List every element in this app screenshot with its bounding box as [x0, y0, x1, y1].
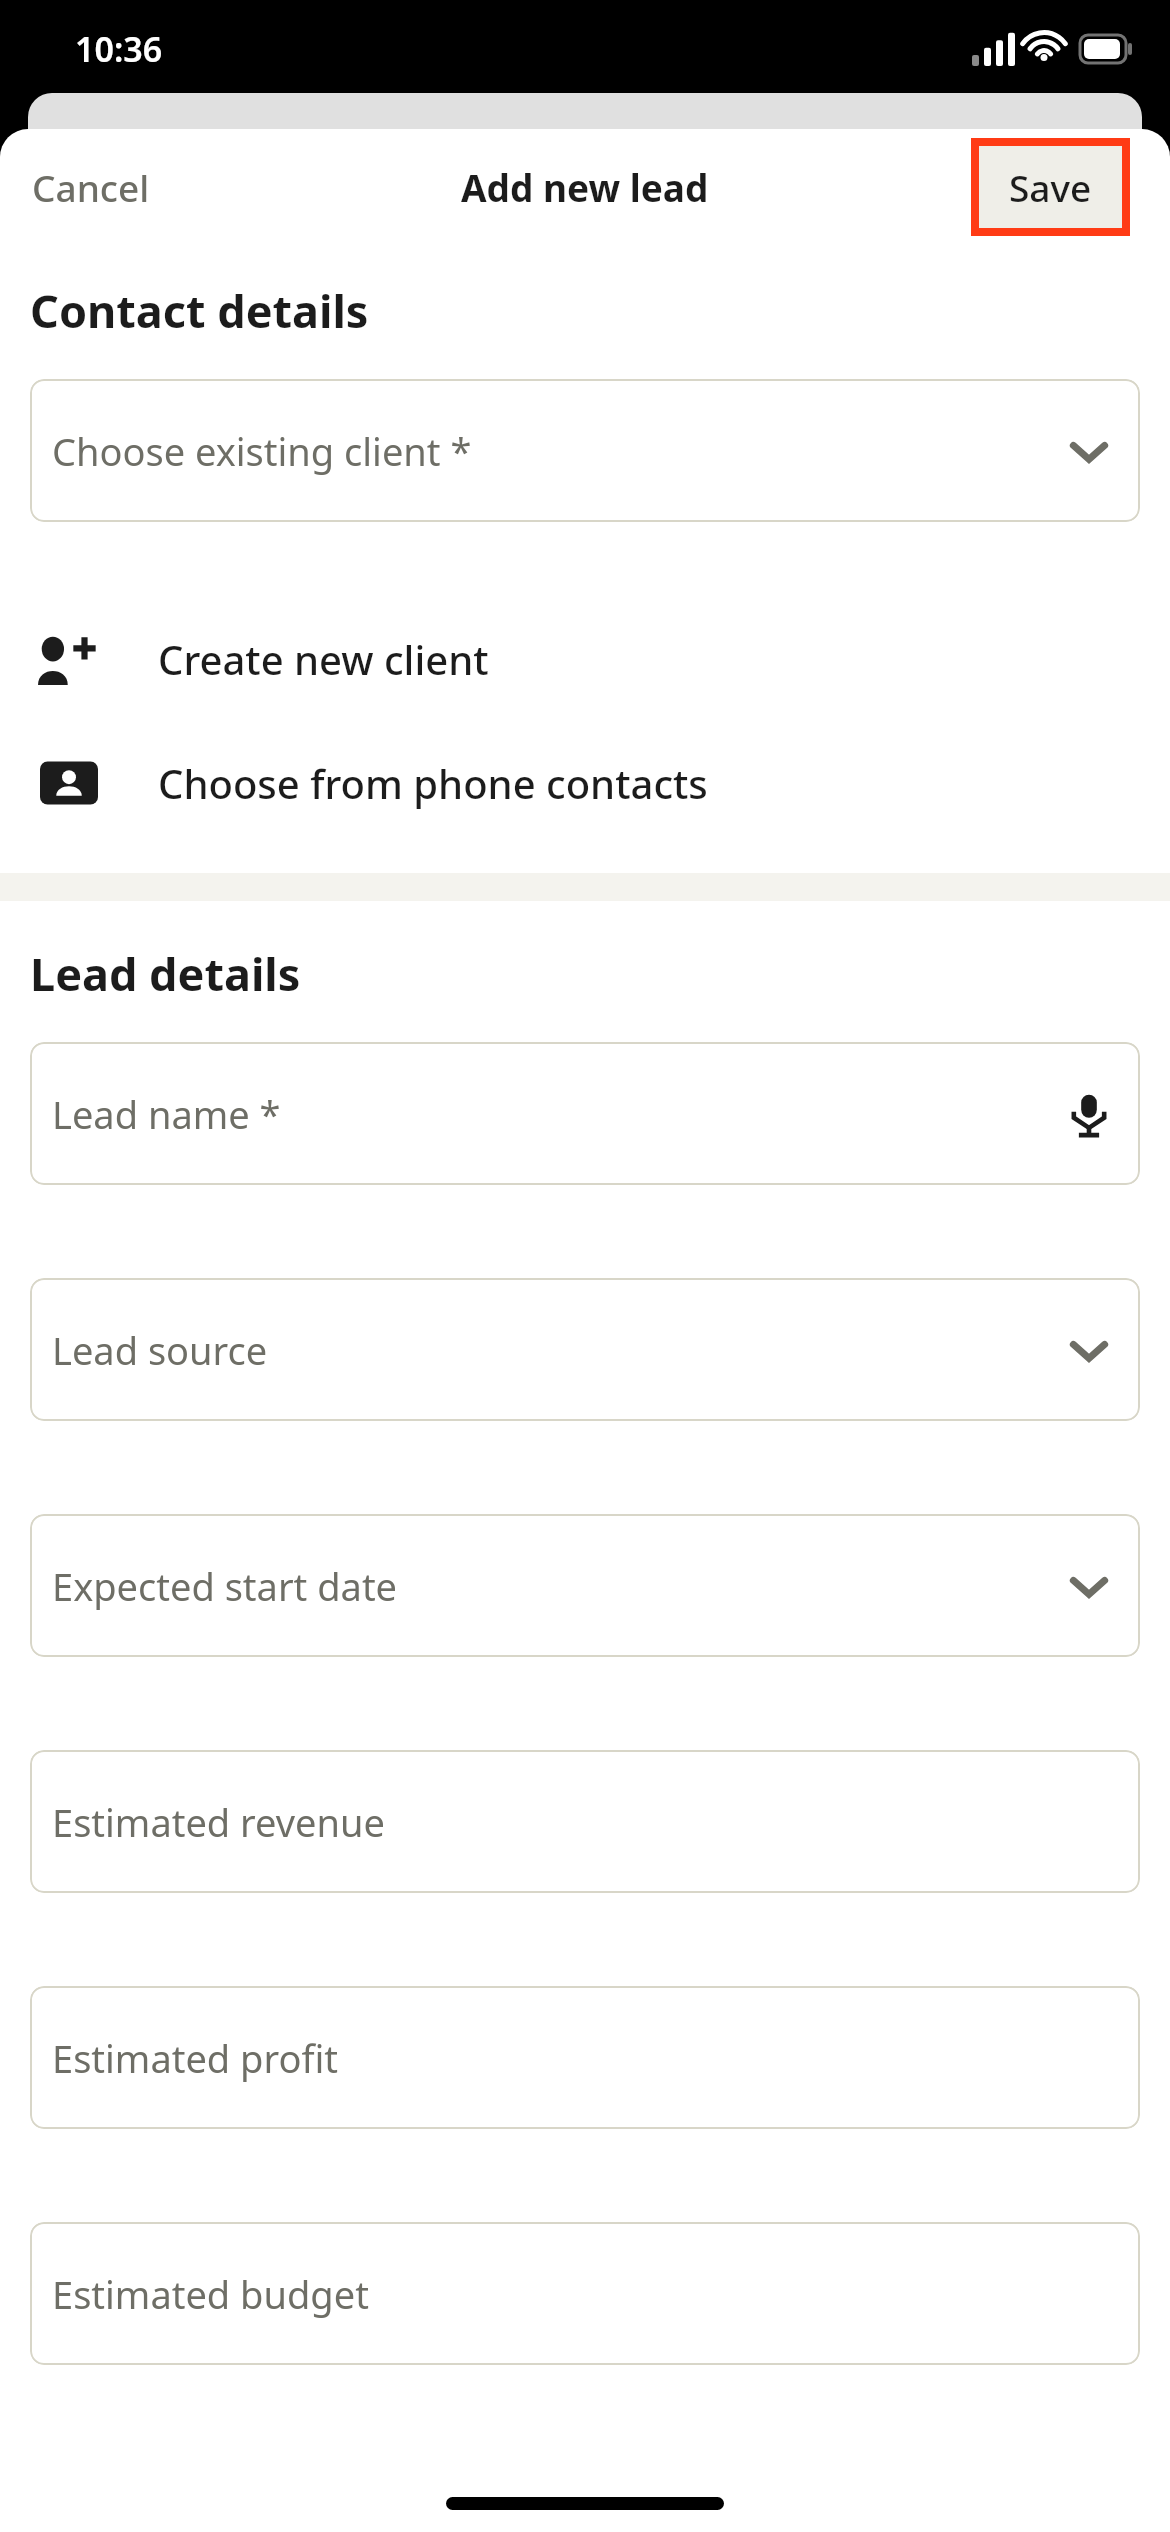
- button[interactable]: Choose existing client *: [30, 379, 1140, 522]
- staticText: Lead name *: [52, 1088, 281, 1140]
- other: Voice input: [1066, 1091, 1112, 1137]
- staticText: Create new client: [158, 632, 489, 686]
- button[interactable]: Estimated budget: [30, 2222, 1140, 2365]
- staticText: Estimated revenue: [52, 1796, 385, 1848]
- button[interactable]: Lead name *: [30, 1042, 1140, 1185]
- button[interactable]: Estimated profit: [30, 1986, 1140, 2129]
- button[interactable]: Save: [979, 146, 1122, 228]
- button[interactable]: Cancel: [14, 152, 168, 222]
- button[interactable]: Choose from phone contacts: [0, 736, 1170, 830]
- staticText: Expected start date: [52, 1560, 398, 1612]
- staticText: Contact details: [30, 280, 369, 341]
- staticText: Cancel: [32, 162, 150, 212]
- staticText: Choose existing client *: [52, 425, 472, 477]
- staticText: Estimated budget: [52, 2268, 369, 2320]
- staticText: Save: [1009, 162, 1092, 212]
- staticText: Add new lead: [461, 162, 709, 212]
- button[interactable]: Expected start date: [30, 1514, 1140, 1657]
- staticText: Choose from phone contacts: [158, 756, 708, 810]
- staticText: Lead source: [52, 1324, 268, 1376]
- staticText: Estimated profit: [52, 2032, 338, 2084]
- staticText: Lead details: [30, 943, 301, 1004]
- button[interactable]: Estimated revenue: [30, 1750, 1140, 1893]
- staticText: 10:36: [75, 26, 163, 72]
- button[interactable]: Create new client: [0, 612, 1170, 706]
- button[interactable]: Lead source: [30, 1278, 1140, 1421]
